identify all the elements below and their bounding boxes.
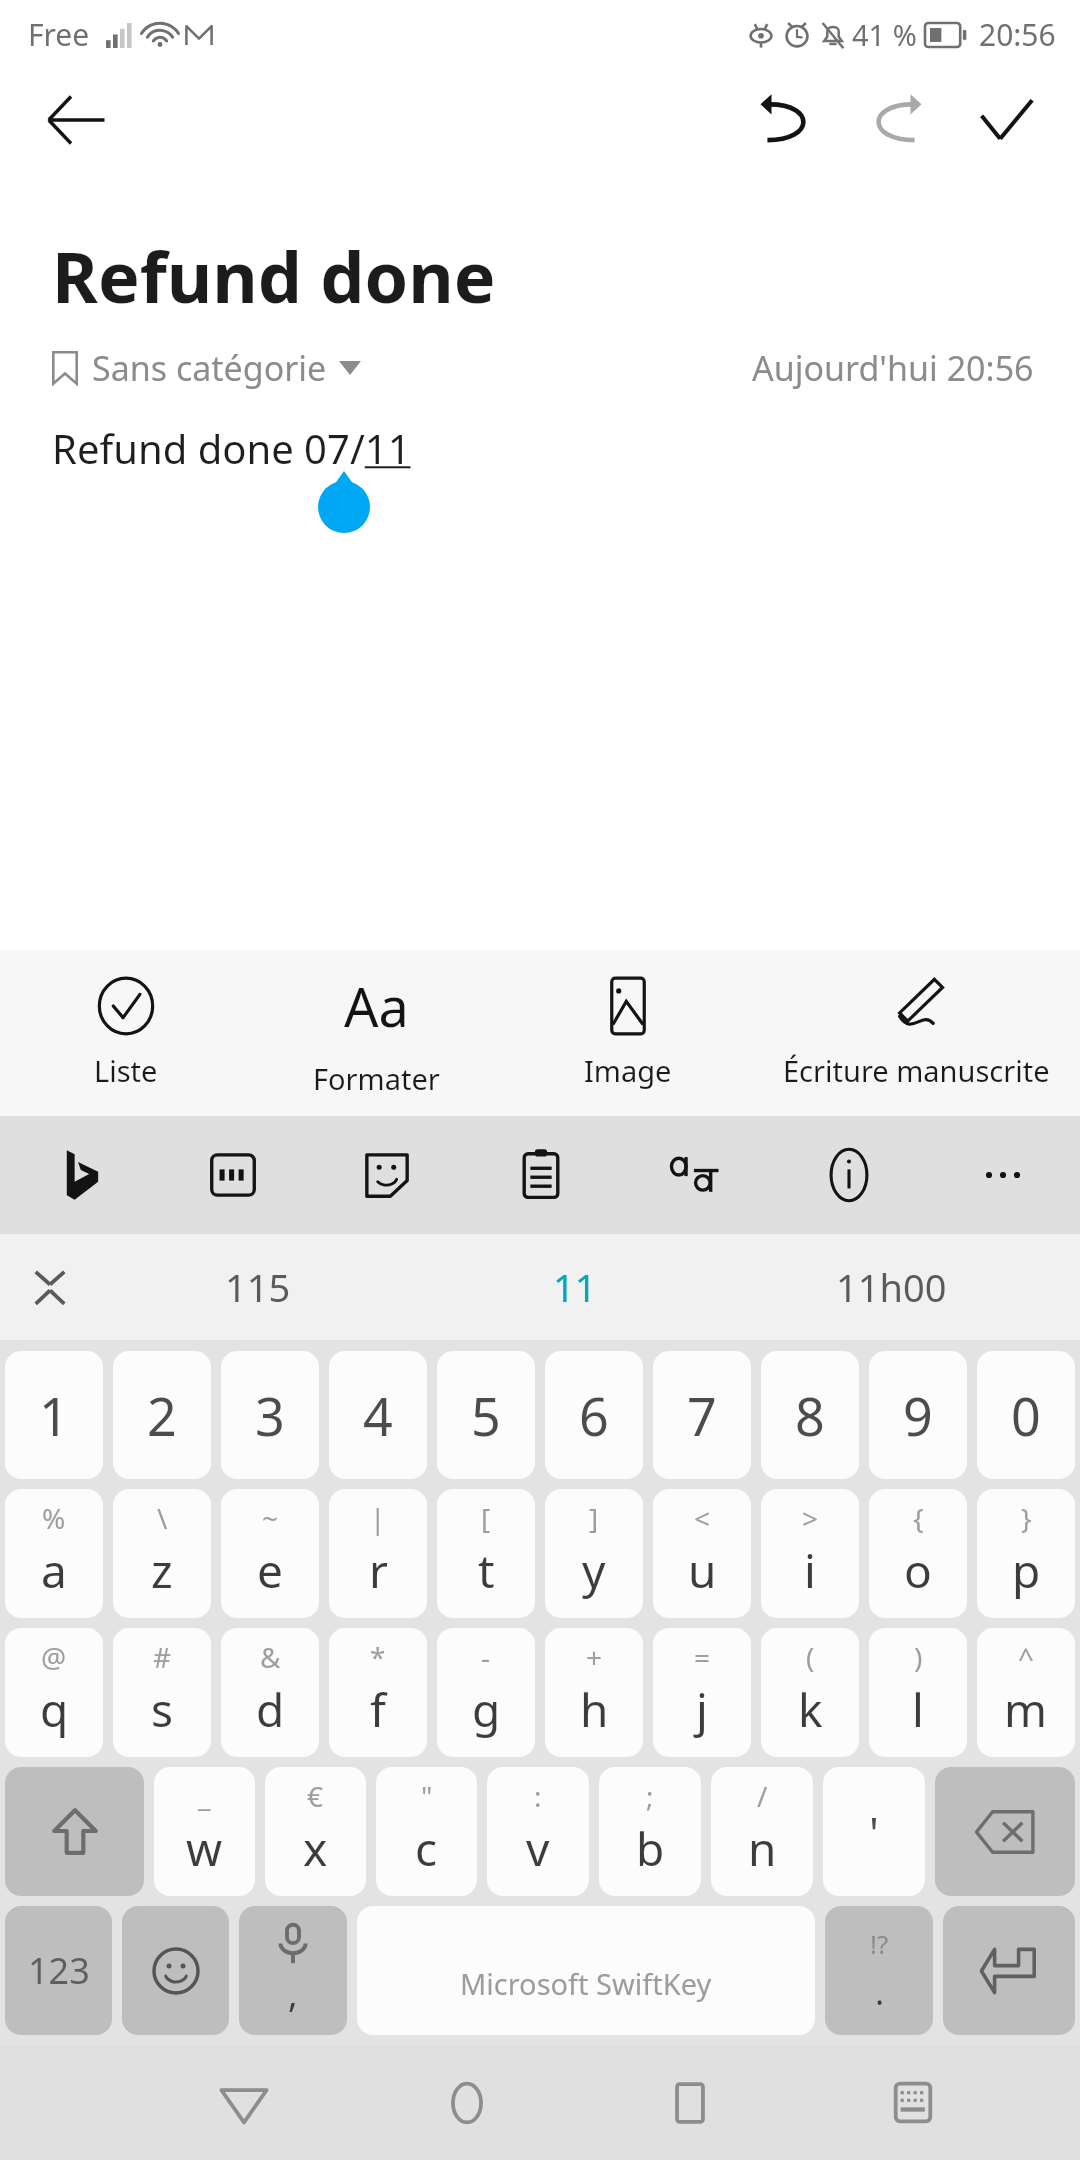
- button[interactable]: 4: [329, 1351, 427, 1479]
- button[interactable]: 0: [977, 1351, 1075, 1479]
- button[interactable]: +: [545, 1628, 643, 1757]
- staticText: 2: [147, 1380, 177, 1451]
- staticText: [: [481, 1499, 491, 1537]
- button[interactable]: |: [329, 1489, 427, 1618]
- staticText: f: [370, 1678, 386, 1741]
- staticText: (: [806, 1638, 815, 1676]
- button[interactable]: ': [823, 1767, 925, 1896]
- button[interactable]: 6: [545, 1351, 643, 1479]
- button[interactable]: mic: [239, 1906, 347, 2035]
- staticText: r: [369, 1539, 388, 1602]
- staticText: Aa: [344, 969, 409, 1043]
- button[interactable]: 11: [416, 1234, 733, 1340]
- button[interactable]: Redo: [846, 70, 946, 170]
- button[interactable]: ;: [599, 1767, 701, 1896]
- button[interactable]: Stickers: [310, 1116, 464, 1234]
- button[interactable]: Collapse predictions: [8, 1245, 92, 1329]
- button[interactable]: \: [113, 1489, 211, 1618]
- button[interactable]: Undo: [736, 70, 836, 170]
- button[interactable]: Aa: [251, 950, 502, 1116]
- staticText: |: [370, 1499, 386, 1537]
- button[interactable]: [: [437, 1489, 535, 1618]
- button[interactable]: &: [221, 1628, 319, 1757]
- staticText: =: [694, 1638, 711, 1676]
- button[interactable]: ^: [977, 1628, 1075, 1757]
- button[interactable]: Écriture manuscrite: [753, 950, 1080, 1116]
- button[interactable]: Liste: [0, 950, 251, 1116]
- staticText: 11h00: [836, 1261, 947, 1313]
- button[interactable]: €: [265, 1767, 366, 1896]
- staticText: -: [481, 1638, 491, 1676]
- button[interactable]: =: [653, 1628, 751, 1757]
- button[interactable]: Info: [772, 1116, 926, 1234]
- button[interactable]: punct: [825, 1906, 933, 2035]
- staticText: 7: [687, 1380, 717, 1451]
- button[interactable]: >: [761, 1489, 859, 1618]
- button[interactable]: 1: [5, 1351, 103, 1479]
- button[interactable]: Translate: [618, 1116, 772, 1234]
- button[interactable]: %: [5, 1489, 103, 1618]
- staticText: Microsoft SwiftKey: [460, 1964, 712, 2003]
- button[interactable]: {: [869, 1489, 967, 1618]
- button[interactable]: Back: [133, 2046, 355, 2160]
- staticText: p: [1012, 1539, 1041, 1602]
- button[interactable]: Home: [355, 2046, 578, 2160]
- button[interactable]: Save: [956, 70, 1056, 170]
- button[interactable]: ": [376, 1767, 477, 1896]
- button[interactable]: emoji: [122, 1906, 229, 2035]
- staticText: 41 %: [852, 15, 917, 54]
- button[interactable]: Bing search: [0, 1116, 155, 1234]
- button[interactable]: @: [5, 1628, 103, 1757]
- staticText: Refund done: [52, 228, 496, 323]
- button[interactable]: 8: [761, 1351, 859, 1479]
- button[interactable]: 7: [653, 1351, 751, 1479]
- staticText: q: [40, 1678, 69, 1741]
- staticText: m: [1004, 1678, 1048, 1741]
- staticText: ): [914, 1638, 923, 1676]
- button[interactable]: 115: [100, 1234, 416, 1340]
- button[interactable]: #: [113, 1628, 211, 1757]
- button[interactable]: 2: [113, 1351, 211, 1479]
- staticText: 20:56: [979, 14, 1056, 55]
- button[interactable]: 9: [869, 1351, 967, 1479]
- staticText: >: [802, 1499, 819, 1537]
- staticText: l: [912, 1678, 924, 1741]
- staticText: #: [153, 1638, 172, 1676]
- staticText: x: [303, 1817, 328, 1880]
- button[interactable]: 5: [437, 1351, 535, 1479]
- button[interactable]: del: [935, 1767, 1075, 1896]
- staticText: ]: [589, 1499, 599, 1537]
- button[interactable]: 123: [5, 1906, 112, 2035]
- staticText: ;: [646, 1777, 654, 1815]
- button[interactable]: ]: [545, 1489, 643, 1618]
- button[interactable]: Image: [502, 950, 753, 1116]
- button[interactable]: -: [437, 1628, 535, 1757]
- staticText: d: [256, 1678, 285, 1741]
- button[interactable]: <: [653, 1489, 751, 1618]
- button[interactable]: 3: [221, 1351, 319, 1479]
- button[interactable]: _: [154, 1767, 255, 1896]
- staticText: y: [582, 1539, 606, 1602]
- button[interactable]: Microsoft SwiftKey: [357, 1906, 815, 2035]
- button[interactable]: *: [329, 1628, 427, 1757]
- button[interactable]: shift: [5, 1767, 144, 1896]
- button[interactable]: Hide keyboard: [801, 2046, 1024, 2160]
- button[interactable]: GIF: [155, 1116, 310, 1234]
- button[interactable]: Clipboard: [464, 1116, 618, 1234]
- button[interactable]: Recent apps: [578, 2046, 801, 2160]
- button[interactable]: Back: [26, 70, 126, 170]
- staticText: 115: [225, 1261, 291, 1313]
- button[interactable]: 11h00: [733, 1234, 1050, 1340]
- button[interactable]: More options: [926, 1116, 1080, 1234]
- button[interactable]: Sans catégorie: [52, 345, 361, 391]
- button[interactable]: :: [487, 1767, 589, 1896]
- staticText: k: [798, 1678, 823, 1741]
- button[interactable]: (: [761, 1628, 859, 1757]
- staticText: Liste: [94, 1051, 158, 1090]
- button[interactable]: }: [977, 1489, 1075, 1618]
- button[interactable]: ): [869, 1628, 967, 1757]
- staticText: \: [157, 1499, 168, 1537]
- button[interactable]: ~: [221, 1489, 319, 1618]
- button[interactable]: /: [711, 1767, 813, 1896]
- button[interactable]: enter: [943, 1906, 1075, 2035]
